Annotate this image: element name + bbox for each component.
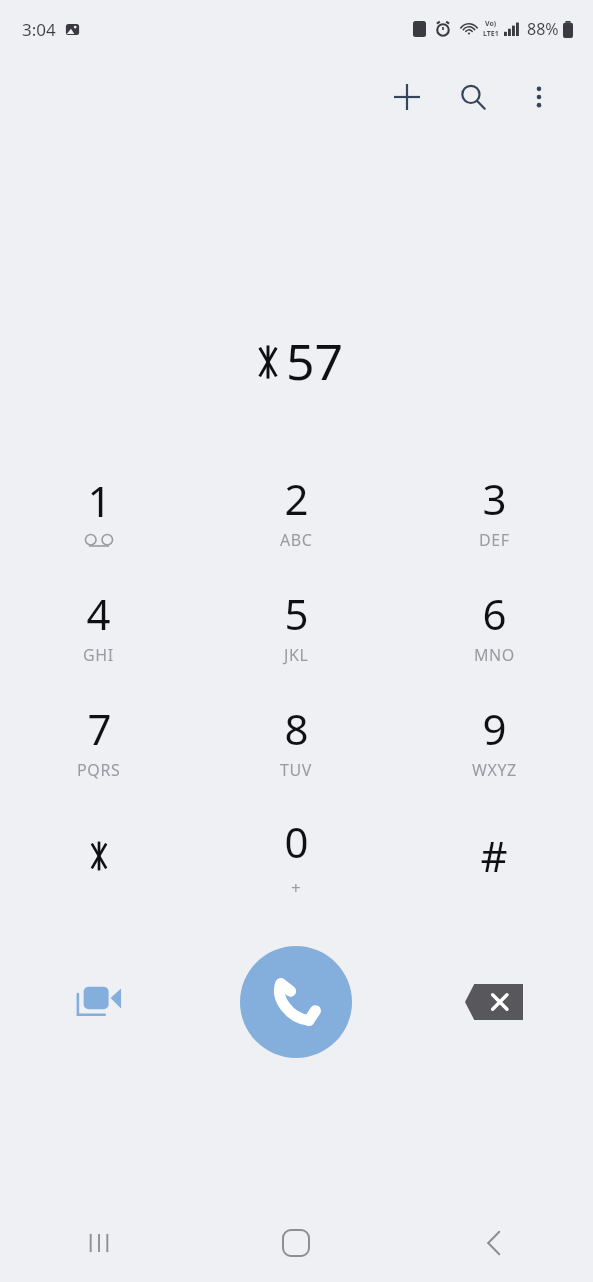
button[interactable]: 4: [0, 568, 197, 683]
button[interactable]: Back: [395, 1204, 593, 1282]
staticText: +: [291, 876, 302, 899]
button[interactable]: 7: [0, 683, 197, 798]
staticText: 3: [482, 470, 507, 527]
staticText: MNO: [474, 644, 515, 666]
staticText: 3:04: [22, 18, 56, 41]
button[interactable]: 8: [197, 683, 395, 798]
staticText: ABC: [280, 529, 313, 551]
staticText: WXYZ: [472, 759, 517, 781]
button[interactable]: Recents: [0, 1204, 197, 1282]
button[interactable]: Add contact: [381, 71, 433, 123]
button[interactable]: [0, 798, 197, 913]
staticText: TUV: [280, 759, 312, 781]
button[interactable]: 0: [197, 798, 395, 913]
staticText: 5: [284, 585, 309, 642]
staticText: 88%: [527, 18, 559, 40]
staticText: PQRS: [77, 759, 121, 781]
staticText: 2: [284, 470, 309, 527]
staticText: JKL: [284, 644, 309, 666]
staticText: 9: [482, 700, 507, 757]
staticText: Vo): [485, 19, 497, 29]
staticText: 8: [284, 700, 309, 757]
staticText: DEF: [479, 529, 510, 551]
staticText: #: [480, 827, 508, 884]
staticText: 6: [482, 585, 507, 642]
staticText: LTE1: [483, 29, 499, 39]
staticText: GHI: [83, 644, 114, 666]
button[interactable]: 5: [197, 568, 395, 683]
button[interactable]: Call: [240, 946, 352, 1058]
button[interactable]: 2: [197, 453, 395, 568]
button[interactable]: 3: [395, 453, 593, 568]
button[interactable]: Search: [447, 71, 499, 123]
button[interactable]: More options: [513, 71, 565, 123]
button[interactable]: Video call: [0, 937, 197, 1067]
button[interactable]: 6: [395, 568, 593, 683]
button[interactable]: 1: [0, 453, 197, 568]
staticText: 1: [87, 472, 112, 529]
staticText: 0: [284, 813, 309, 870]
staticText: 57: [286, 327, 344, 395]
button[interactable]: Home: [197, 1204, 395, 1282]
button[interactable]: 9: [395, 683, 593, 798]
button[interactable]: #: [395, 798, 593, 913]
button[interactable]: Backspace: [395, 937, 593, 1067]
staticText: 7: [87, 700, 112, 757]
staticText: 4: [86, 585, 111, 642]
